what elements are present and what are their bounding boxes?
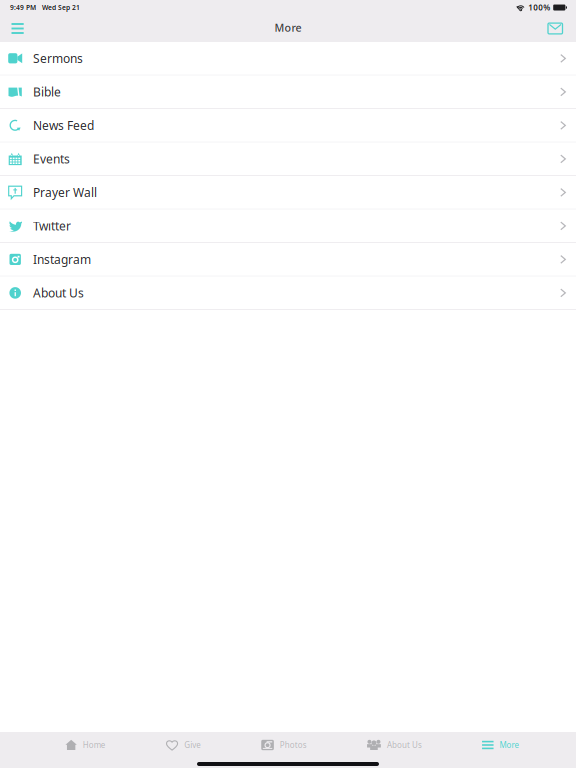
button[interactable]: Prayer Wall	[0, 176, 576, 209]
button[interactable]: More	[482, 732, 520, 758]
button[interactable]: Home	[65, 732, 106, 758]
button[interactable]: About Us	[0, 276, 576, 310]
button[interactable]: About Us	[367, 732, 422, 758]
button[interactable]: Twitter	[0, 209, 576, 243]
staticText: Wed Sep 21	[42, 3, 80, 12]
staticText: More	[500, 740, 520, 750]
staticText: Bible	[33, 84, 61, 100]
staticText: Photos	[280, 740, 307, 750]
button[interactable]: Instagram	[0, 243, 576, 276]
staticText: More	[274, 20, 301, 35]
button[interactable]: Give	[166, 732, 201, 758]
button[interactable]: Sermons	[0, 42, 576, 75]
staticText: About Us	[33, 285, 84, 301]
button[interactable]: Photos	[261, 732, 307, 758]
staticText: News Feed	[33, 117, 94, 133]
staticText: Instagram	[33, 251, 91, 267]
staticText: 100%	[528, 2, 550, 13]
staticText: Events	[33, 151, 70, 167]
staticText: About Us	[387, 740, 422, 750]
button[interactable]: Events	[0, 142, 576, 176]
button[interactable]: Mail	[538, 15, 576, 42]
staticText: Twitter	[33, 218, 71, 234]
staticText: Sermons	[33, 50, 83, 66]
staticText: Give	[184, 740, 201, 750]
staticText: 9:49 PM	[10, 3, 36, 12]
staticText: Prayer Wall	[33, 184, 97, 200]
staticText: Home	[83, 740, 106, 750]
button[interactable]: News Feed	[0, 109, 576, 142]
button[interactable]: Bible	[0, 75, 576, 109]
button[interactable]: Menu	[0, 15, 35, 42]
